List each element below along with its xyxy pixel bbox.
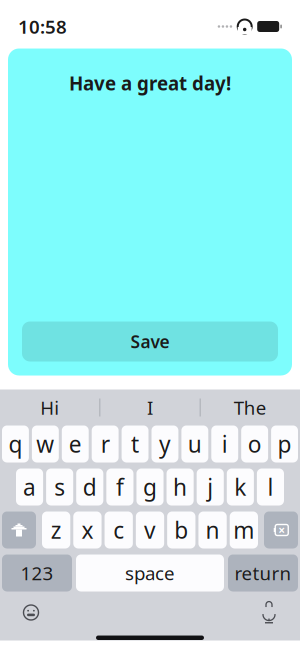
staticText: u bbox=[188, 429, 202, 459]
button[interactable]: z bbox=[42, 511, 70, 548]
button[interactable]: Hi bbox=[0, 391, 99, 423]
staticText: f bbox=[116, 472, 124, 502]
button[interactable]: space bbox=[76, 554, 224, 591]
staticText: Have a great day! bbox=[69, 70, 231, 96]
staticText: n bbox=[206, 515, 220, 545]
staticText: x bbox=[81, 515, 93, 545]
button[interactable]: y bbox=[151, 425, 178, 462]
button[interactable]: x bbox=[73, 511, 102, 548]
button[interactable]: c bbox=[105, 511, 133, 548]
staticText: b bbox=[174, 515, 188, 545]
button[interactable]: i bbox=[211, 425, 238, 462]
staticText: j bbox=[207, 472, 213, 502]
button[interactable]: p bbox=[271, 425, 298, 462]
staticText: return bbox=[234, 561, 291, 585]
staticText: The bbox=[234, 395, 267, 420]
button[interactable]: u bbox=[181, 425, 208, 462]
staticText: z bbox=[51, 515, 62, 545]
button[interactable]: The bbox=[201, 391, 300, 423]
staticText: p bbox=[278, 429, 292, 459]
button[interactable]: s bbox=[46, 468, 73, 505]
button[interactable]: 123 bbox=[2, 554, 72, 591]
staticText: k bbox=[234, 472, 246, 502]
staticText: 10:58 bbox=[18, 14, 67, 39]
button[interactable]: Emoji bbox=[14, 597, 48, 627]
staticText: s bbox=[54, 472, 65, 502]
button[interactable]: Dictate bbox=[252, 597, 286, 627]
staticText: l bbox=[267, 472, 273, 502]
button[interactable]: f bbox=[106, 468, 133, 505]
button[interactable]: j bbox=[197, 468, 224, 505]
staticText: i bbox=[222, 429, 228, 459]
button[interactable]: w bbox=[32, 425, 59, 462]
button[interactable]: k bbox=[227, 468, 254, 505]
staticText: 123 bbox=[20, 561, 53, 585]
button[interactable]: Save bbox=[22, 321, 278, 361]
staticText: m bbox=[233, 515, 254, 545]
staticText: q bbox=[8, 429, 22, 459]
staticText: o bbox=[248, 429, 262, 459]
button[interactable]: r bbox=[92, 425, 119, 462]
staticText: t bbox=[131, 429, 139, 459]
button[interactable]: v bbox=[136, 511, 164, 548]
staticText: y bbox=[159, 429, 171, 459]
button[interactable]: Delete bbox=[264, 511, 298, 548]
button[interactable]: Shift bbox=[2, 511, 36, 548]
staticText: space bbox=[125, 561, 175, 585]
staticText: e bbox=[69, 429, 82, 459]
staticText: r bbox=[101, 429, 110, 459]
button[interactable]: t bbox=[122, 425, 148, 462]
button[interactable]: d bbox=[76, 468, 103, 505]
button[interactable]: m bbox=[230, 511, 258, 548]
staticText: I bbox=[147, 395, 153, 420]
staticText: d bbox=[83, 472, 97, 502]
button[interactable]: I bbox=[100, 391, 200, 423]
staticText: Hi bbox=[40, 395, 59, 420]
button[interactable]: h bbox=[167, 468, 194, 505]
button[interactable]: b bbox=[167, 511, 195, 548]
button[interactable]: q bbox=[2, 425, 29, 462]
button[interactable]: return bbox=[228, 554, 298, 591]
staticText: v bbox=[144, 515, 156, 545]
button[interactable]: o bbox=[241, 425, 268, 462]
staticText: w bbox=[36, 429, 54, 459]
staticText: a bbox=[23, 472, 36, 502]
staticText: c bbox=[113, 515, 124, 545]
staticText: × bbox=[278, 522, 285, 538]
button[interactable]: a bbox=[16, 468, 43, 505]
staticText: g bbox=[143, 472, 157, 502]
button[interactable]: e bbox=[62, 425, 89, 462]
button[interactable]: n bbox=[198, 511, 227, 548]
staticText: h bbox=[173, 472, 187, 502]
button[interactable]: g bbox=[136, 468, 163, 505]
button[interactable]: l bbox=[257, 468, 284, 505]
staticText: Save bbox=[130, 330, 169, 353]
